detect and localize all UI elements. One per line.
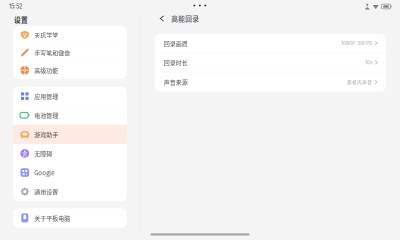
staticText: 回录时长 [164, 58, 188, 67]
staticText: 高级功能 [34, 66, 58, 75]
staticText: 高能回录 [171, 14, 199, 23]
staticText: 15:52 [9, 3, 22, 10]
button[interactable]: 高级功能 [13, 61, 127, 79]
button[interactable]: 回录时长 [155, 53, 386, 72]
staticText: Google [34, 168, 54, 177]
button[interactable]: 手写笔和键盘 [13, 44, 127, 61]
staticText: 回录画质 [164, 39, 188, 48]
button[interactable]: 声音来源 [155, 72, 386, 92]
staticText: 电池管理 [34, 111, 58, 120]
staticText: 声音来源 [164, 78, 188, 86]
staticText: 原机内声音 [347, 79, 372, 85]
staticText: 10s [365, 60, 372, 65]
button[interactable]: 应用管理 [13, 87, 127, 106]
button[interactable]: 游戏助手 [13, 125, 127, 144]
staticText: 手写笔和键盘 [34, 48, 70, 57]
button[interactable]: 无障碍 [13, 144, 127, 163]
staticText: 设置 [14, 15, 28, 24]
staticText: 无障碍 [34, 149, 52, 158]
button[interactable]: 电池管理 [13, 106, 127, 125]
staticText: 应用管理 [34, 92, 58, 100]
staticText: 天玑学堂 [34, 30, 58, 39]
button[interactable]: Google [13, 163, 127, 182]
staticText: 1080P 30FPS [341, 41, 372, 46]
button[interactable]: 回录画质 [155, 34, 386, 53]
button[interactable]: 通用设置 [13, 182, 127, 201]
staticText: 关于平板电脑 [34, 214, 70, 222]
button[interactable]: 天玑学堂 [13, 26, 127, 44]
staticText: 通用设置 [34, 187, 58, 196]
button[interactable]: 返回 [155, 11, 169, 25]
staticText: 游戏助手 [34, 130, 58, 139]
button[interactable]: 关于平板电脑 [13, 208, 127, 228]
